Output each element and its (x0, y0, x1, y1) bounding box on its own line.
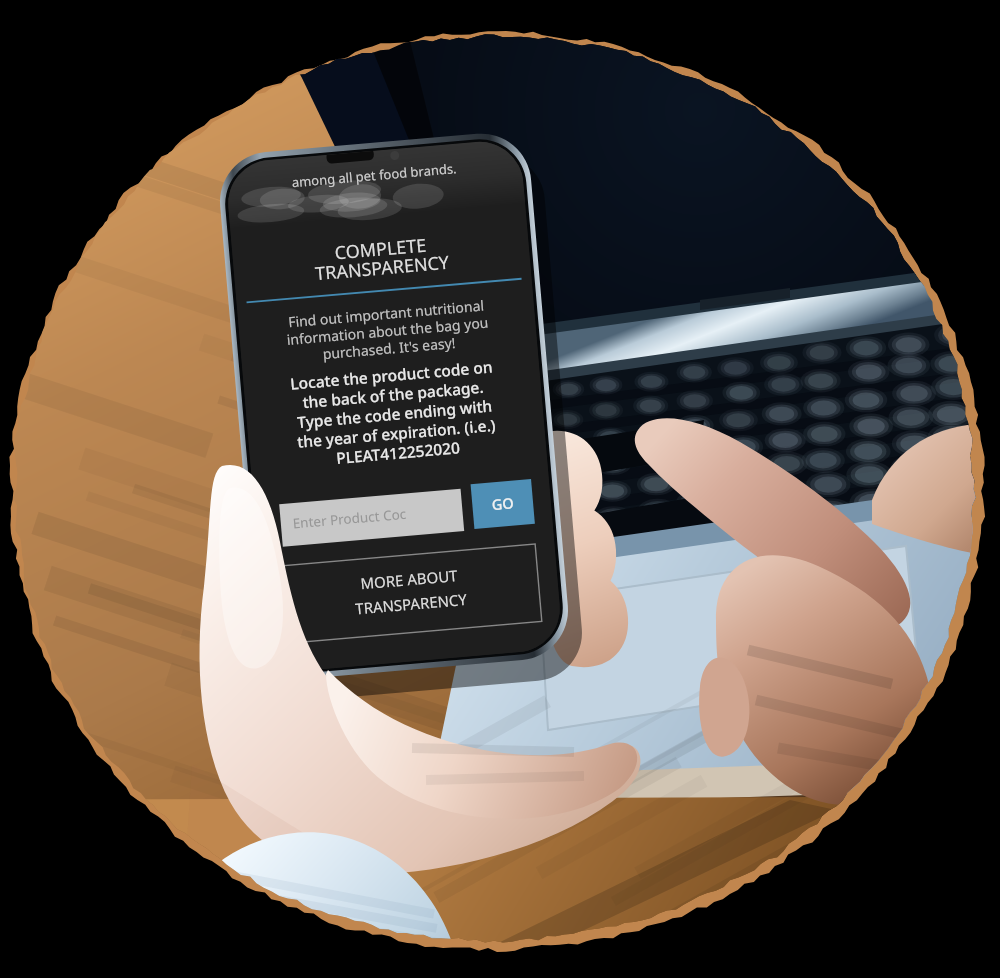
button[interactable]: GO (461, 481, 523, 527)
button[interactable]: Enter Product Code (268, 483, 446, 525)
button[interactable]: More about transparency (278, 544, 535, 626)
